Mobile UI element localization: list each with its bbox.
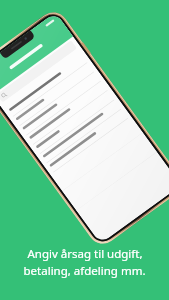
staticText: betaling, afdeling mm. [23, 263, 146, 279]
staticText: Angiv årsag til udgift, [27, 246, 143, 262]
button[interactable]: Angiv årsag til udgift, [0, 0, 169, 300]
